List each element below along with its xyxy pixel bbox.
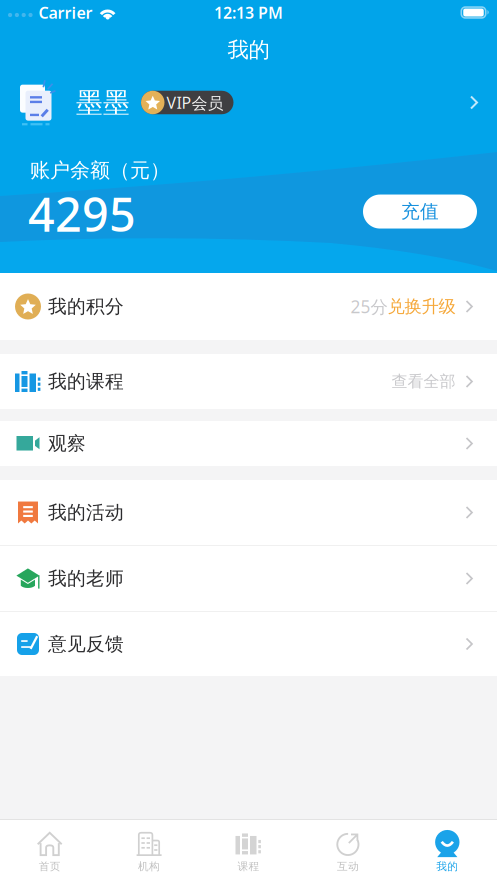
button[interactable]: 互动: [298, 822, 398, 880]
staticText: 课程: [237, 860, 259, 873]
button[interactable]: 我的积分: [0, 273, 497, 340]
staticText: 查看全部: [391, 372, 455, 391]
staticText: 我的课程: [48, 370, 124, 393]
staticText: 账户余额（元）: [30, 158, 170, 183]
staticText: 我的老师: [48, 567, 124, 590]
staticText: 4295: [28, 183, 136, 245]
staticText: 观察: [48, 432, 86, 455]
button[interactable]: 我的课程: [0, 354, 497, 409]
staticText: 机构: [138, 860, 160, 873]
staticText: 首页: [39, 860, 61, 873]
staticText: 兑换升级: [387, 296, 455, 317]
staticText: 我的: [227, 37, 269, 63]
button[interactable]: 首页: [0, 822, 99, 880]
button[interactable]: 我的活动: [0, 480, 497, 545]
button[interactable]: 我的: [398, 822, 497, 880]
staticText: 我的: [436, 860, 458, 873]
button[interactable]: 墨墨: [0, 79, 497, 126]
button[interactable]: 机构: [99, 822, 199, 880]
staticText: Carrier: [39, 2, 93, 23]
button[interactable]: 观察: [0, 421, 497, 466]
staticText: VIP会员: [166, 92, 223, 113]
button[interactable]: 意见反馈: [0, 612, 497, 676]
button[interactable]: 充值: [363, 195, 477, 229]
staticText: 互动: [337, 860, 359, 873]
button[interactable]: 我的老师: [0, 546, 497, 611]
staticText: 意见反馈: [48, 632, 124, 655]
staticText: 墨墨: [76, 86, 130, 119]
staticText: 我的活动: [48, 501, 124, 524]
staticText: 我的积分: [48, 295, 124, 318]
button[interactable]: 课程: [199, 822, 298, 880]
staticText: 12:13 PM: [214, 2, 283, 23]
staticText: 充值: [401, 200, 439, 223]
staticText: 25分: [350, 295, 387, 318]
